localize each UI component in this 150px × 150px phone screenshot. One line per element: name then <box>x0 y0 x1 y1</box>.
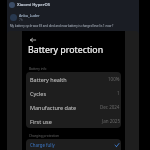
staticText: Battery health <box>30 76 67 83</box>
button[interactable]: Cycles <box>26 86 121 100</box>
staticText: 100% <box>108 76 120 82</box>
staticText: Charge fully <box>30 142 55 148</box>
staticText: Manufacture date <box>30 104 77 111</box>
staticText: Anbu_Luder <box>19 13 40 18</box>
button[interactable]: Charge fully <box>26 139 121 150</box>
staticText: Xiaomi HyperOS <box>17 2 51 8</box>
staticText: 7h <box>19 18 23 22</box>
button[interactable]: First use <box>26 114 121 128</box>
staticText: Cycles <box>30 90 47 97</box>
button[interactable]: Back <box>28 35 37 44</box>
staticText: First use <box>30 118 52 125</box>
button[interactable]: Manufacture date <box>26 100 121 114</box>
button[interactable]: Battery health <box>26 72 121 86</box>
staticText: Charging protection <box>29 134 60 138</box>
staticText: Jan 2025 <box>102 118 120 124</box>
button[interactable]: Xiaomi HyperOS <box>9 0 135 10</box>
staticText: Battery protection <box>28 44 104 56</box>
staticText: Dec 2024 <box>100 104 120 110</box>
staticText: 1 <box>117 90 120 96</box>
staticText: My battery cycle was 69 and died and now… <box>10 24 114 28</box>
staticText: Battery info <box>29 67 47 71</box>
